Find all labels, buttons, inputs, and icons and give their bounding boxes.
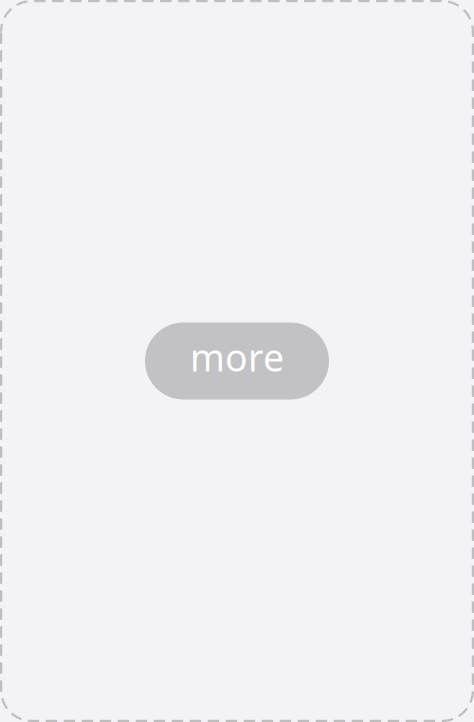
staticText: more bbox=[190, 332, 284, 382]
button[interactable]: more bbox=[145, 322, 329, 399]
